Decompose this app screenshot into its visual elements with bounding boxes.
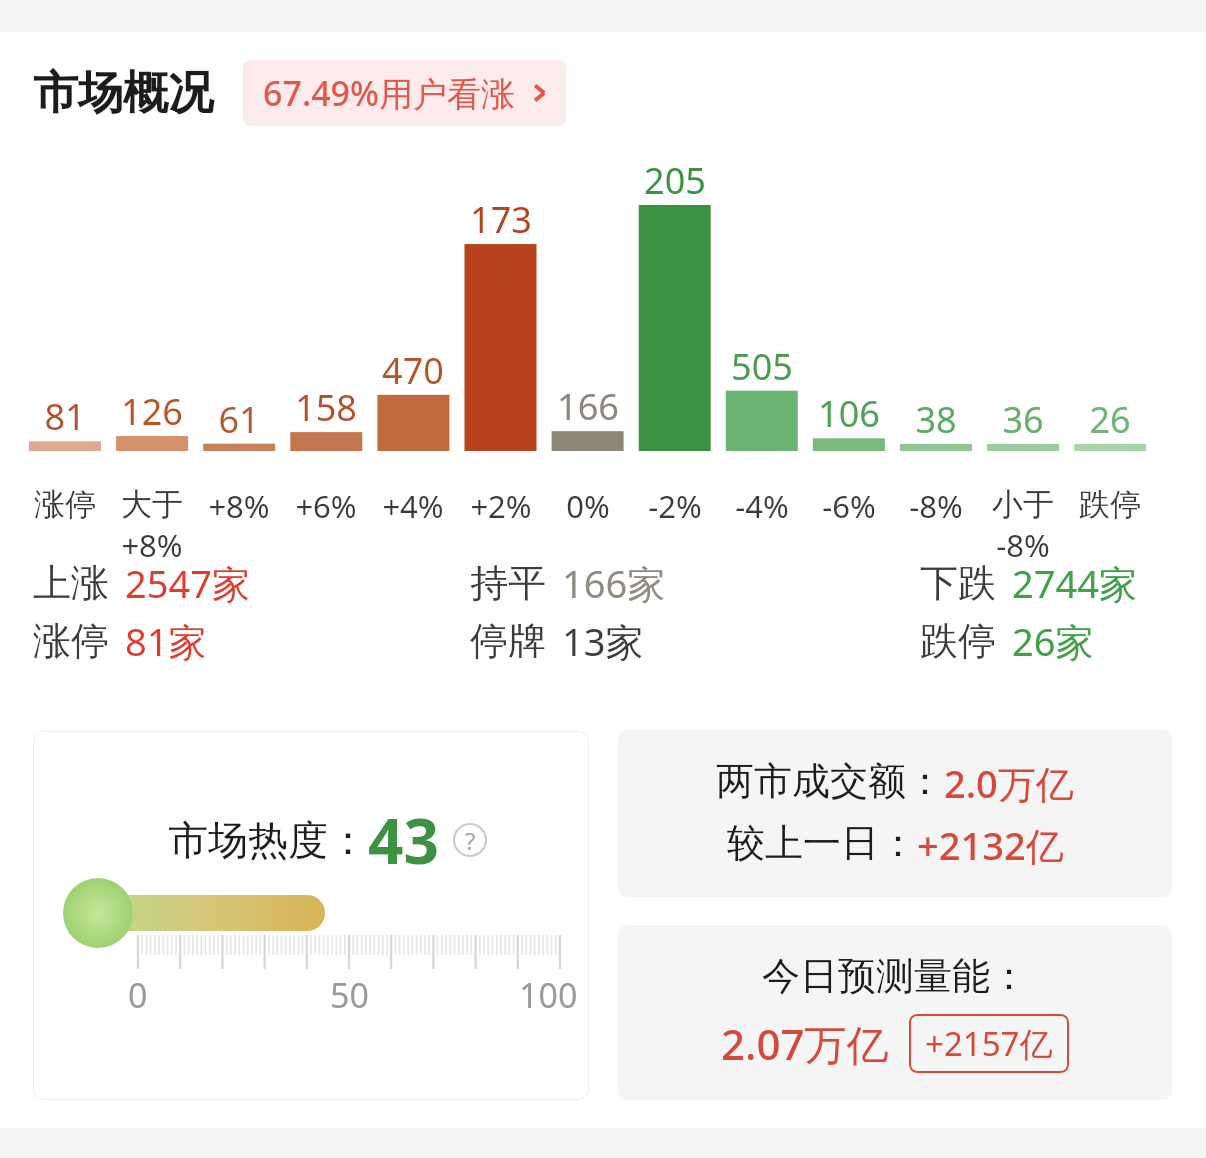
staticText: 涨停 bbox=[33, 617, 109, 665]
staticText: -8% bbox=[996, 524, 1050, 566]
staticText: +4% bbox=[382, 485, 444, 527]
staticText: +2157亿 bbox=[925, 1021, 1053, 1066]
staticText: 1732 bbox=[465, 195, 537, 293]
staticText: 0 bbox=[128, 972, 148, 1018]
staticText: 100 bbox=[519, 972, 578, 1018]
staticText: -4% bbox=[735, 485, 789, 527]
staticText: +6% bbox=[295, 485, 357, 527]
staticText: 0% bbox=[566, 485, 610, 527]
staticText: 126 bbox=[121, 387, 183, 436]
staticText: 跌停 bbox=[920, 617, 996, 665]
staticText: 81家 bbox=[125, 615, 207, 667]
staticText: -8% bbox=[909, 485, 963, 527]
staticText: 26家 bbox=[1012, 615, 1094, 667]
staticText: ? bbox=[465, 824, 476, 857]
staticText: 158 bbox=[295, 383, 357, 432]
staticText: 166家 bbox=[562, 557, 666, 609]
staticText: 市场概况 bbox=[33, 65, 213, 122]
button[interactable]: 两市成交额： bbox=[618, 730, 1172, 897]
staticText: 470 bbox=[382, 346, 444, 395]
staticText: 小于 bbox=[992, 485, 1054, 524]
staticText: 67.49%用户看涨 bbox=[263, 70, 516, 116]
staticText: 市场热度： bbox=[168, 815, 368, 865]
staticText: 81 bbox=[44, 392, 86, 441]
button[interactable]: 下跌 bbox=[920, 557, 1137, 609]
staticText: -2% bbox=[648, 485, 702, 527]
button[interactable]: +2157亿 bbox=[909, 1014, 1069, 1073]
staticText: 26 bbox=[1089, 395, 1131, 444]
staticText: 43 bbox=[368, 798, 439, 882]
staticText: 2744家 bbox=[1012, 557, 1137, 609]
button[interactable]: 市场热度： bbox=[33, 731, 589, 1100]
staticText: 上涨 bbox=[33, 559, 109, 607]
button[interactable]: 帮助 bbox=[453, 823, 487, 857]
staticText: +8% bbox=[208, 485, 270, 527]
staticText: 505 bbox=[731, 342, 793, 391]
staticText: 50 bbox=[330, 972, 369, 1018]
staticText: 2.07万亿 bbox=[721, 1015, 889, 1072]
staticText: -6% bbox=[822, 485, 876, 527]
staticText: 2.0万亿 bbox=[944, 757, 1074, 809]
staticText: 涨停 bbox=[34, 485, 96, 524]
button[interactable]: 上涨 bbox=[33, 557, 250, 609]
staticText: +2% bbox=[470, 485, 532, 527]
staticText: 两市成交额： bbox=[716, 757, 944, 805]
staticText: 较上一日： bbox=[727, 819, 917, 867]
staticText: 下跌 bbox=[920, 559, 996, 607]
staticText: 持平 bbox=[470, 559, 546, 607]
staticText: 61 bbox=[218, 395, 260, 444]
button[interactable]: 跌停 bbox=[920, 615, 1094, 667]
staticText: 2059 bbox=[639, 156, 711, 254]
button[interactable]: 今日预测量能： bbox=[618, 925, 1172, 1100]
staticText: +8% bbox=[121, 524, 183, 566]
staticText: 36 bbox=[1002, 395, 1044, 444]
button[interactable]: 持平 bbox=[470, 557, 666, 609]
button[interactable]: 涨停 bbox=[33, 615, 207, 667]
staticText: 38 bbox=[915, 395, 957, 444]
staticText: 106 bbox=[818, 389, 880, 438]
staticText: +2132亿 bbox=[917, 819, 1064, 871]
staticText: 166 bbox=[557, 382, 619, 431]
staticText: 13家 bbox=[562, 615, 644, 667]
button[interactable]: 67.49%用户看涨 bbox=[243, 60, 566, 126]
staticText: 今日预测量能： bbox=[762, 952, 1028, 1000]
staticText: 大于 bbox=[121, 485, 183, 524]
staticText: 停牌 bbox=[470, 617, 546, 665]
staticText: 2547家 bbox=[125, 557, 250, 609]
staticText: 跌停 bbox=[1079, 485, 1141, 524]
button[interactable]: 停牌 bbox=[470, 615, 644, 667]
